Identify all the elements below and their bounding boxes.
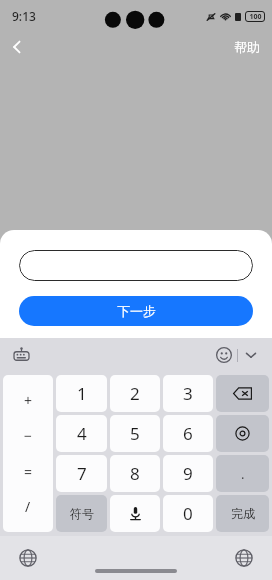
staticText: 8 xyxy=(130,462,140,485)
button[interactable]: 5 xyxy=(110,415,160,452)
button[interactable]: . xyxy=(216,455,269,492)
button[interactable]: Global settings xyxy=(230,544,258,572)
staticText: 帮助 xyxy=(234,39,260,55)
staticText: 5 xyxy=(130,422,140,445)
button[interactable]: At sign xyxy=(216,415,269,452)
button[interactable]: Emoji xyxy=(211,342,237,368)
staticText: 9 xyxy=(183,462,193,485)
button[interactable]: 1 xyxy=(56,375,107,412)
staticText: / xyxy=(25,497,31,516)
staticText: 4 xyxy=(77,422,87,445)
button[interactable]: 符号 xyxy=(56,495,107,532)
button[interactable]: 0 xyxy=(163,495,213,532)
button[interactable]: 3 xyxy=(163,375,213,412)
staticText: 9:13 xyxy=(12,8,36,24)
staticText: 1 xyxy=(77,382,87,405)
staticText: 6 xyxy=(183,422,193,445)
button[interactable]: Symbols column xyxy=(3,375,53,532)
button[interactable]: 9 xyxy=(163,455,213,492)
button[interactable]: 4 xyxy=(56,415,107,452)
staticText: 2 xyxy=(130,382,140,405)
button[interactable]: Input field xyxy=(19,250,253,281)
staticText: . xyxy=(241,465,245,483)
staticText: = xyxy=(24,462,33,481)
staticText: 符号 xyxy=(70,506,94,521)
staticText: + xyxy=(24,391,33,410)
button[interactable]: 8 xyxy=(110,455,160,492)
staticText: 下一步 xyxy=(117,303,156,319)
button[interactable]: Switch keyboard xyxy=(8,342,34,368)
staticText: 100 xyxy=(249,12,262,22)
staticText: − xyxy=(24,426,33,445)
button[interactable]: 2 xyxy=(110,375,160,412)
button[interactable]: Language xyxy=(14,544,42,572)
staticText: 0 xyxy=(183,502,193,525)
staticText: 3 xyxy=(183,382,193,405)
button[interactable]: 帮助 xyxy=(222,35,272,59)
staticText: 7 xyxy=(77,462,87,485)
button[interactable]: Back xyxy=(0,32,34,62)
button[interactable]: 7 xyxy=(56,455,107,492)
staticText: 完成 xyxy=(231,506,255,521)
button[interactable]: 下一步 xyxy=(19,296,253,326)
button[interactable]: Backspace xyxy=(216,375,269,412)
button[interactable]: 完成 xyxy=(216,495,269,532)
button[interactable]: 6 xyxy=(163,415,213,452)
button[interactable]: Voice input xyxy=(110,495,160,532)
button[interactable]: Hide keyboard xyxy=(238,342,264,368)
